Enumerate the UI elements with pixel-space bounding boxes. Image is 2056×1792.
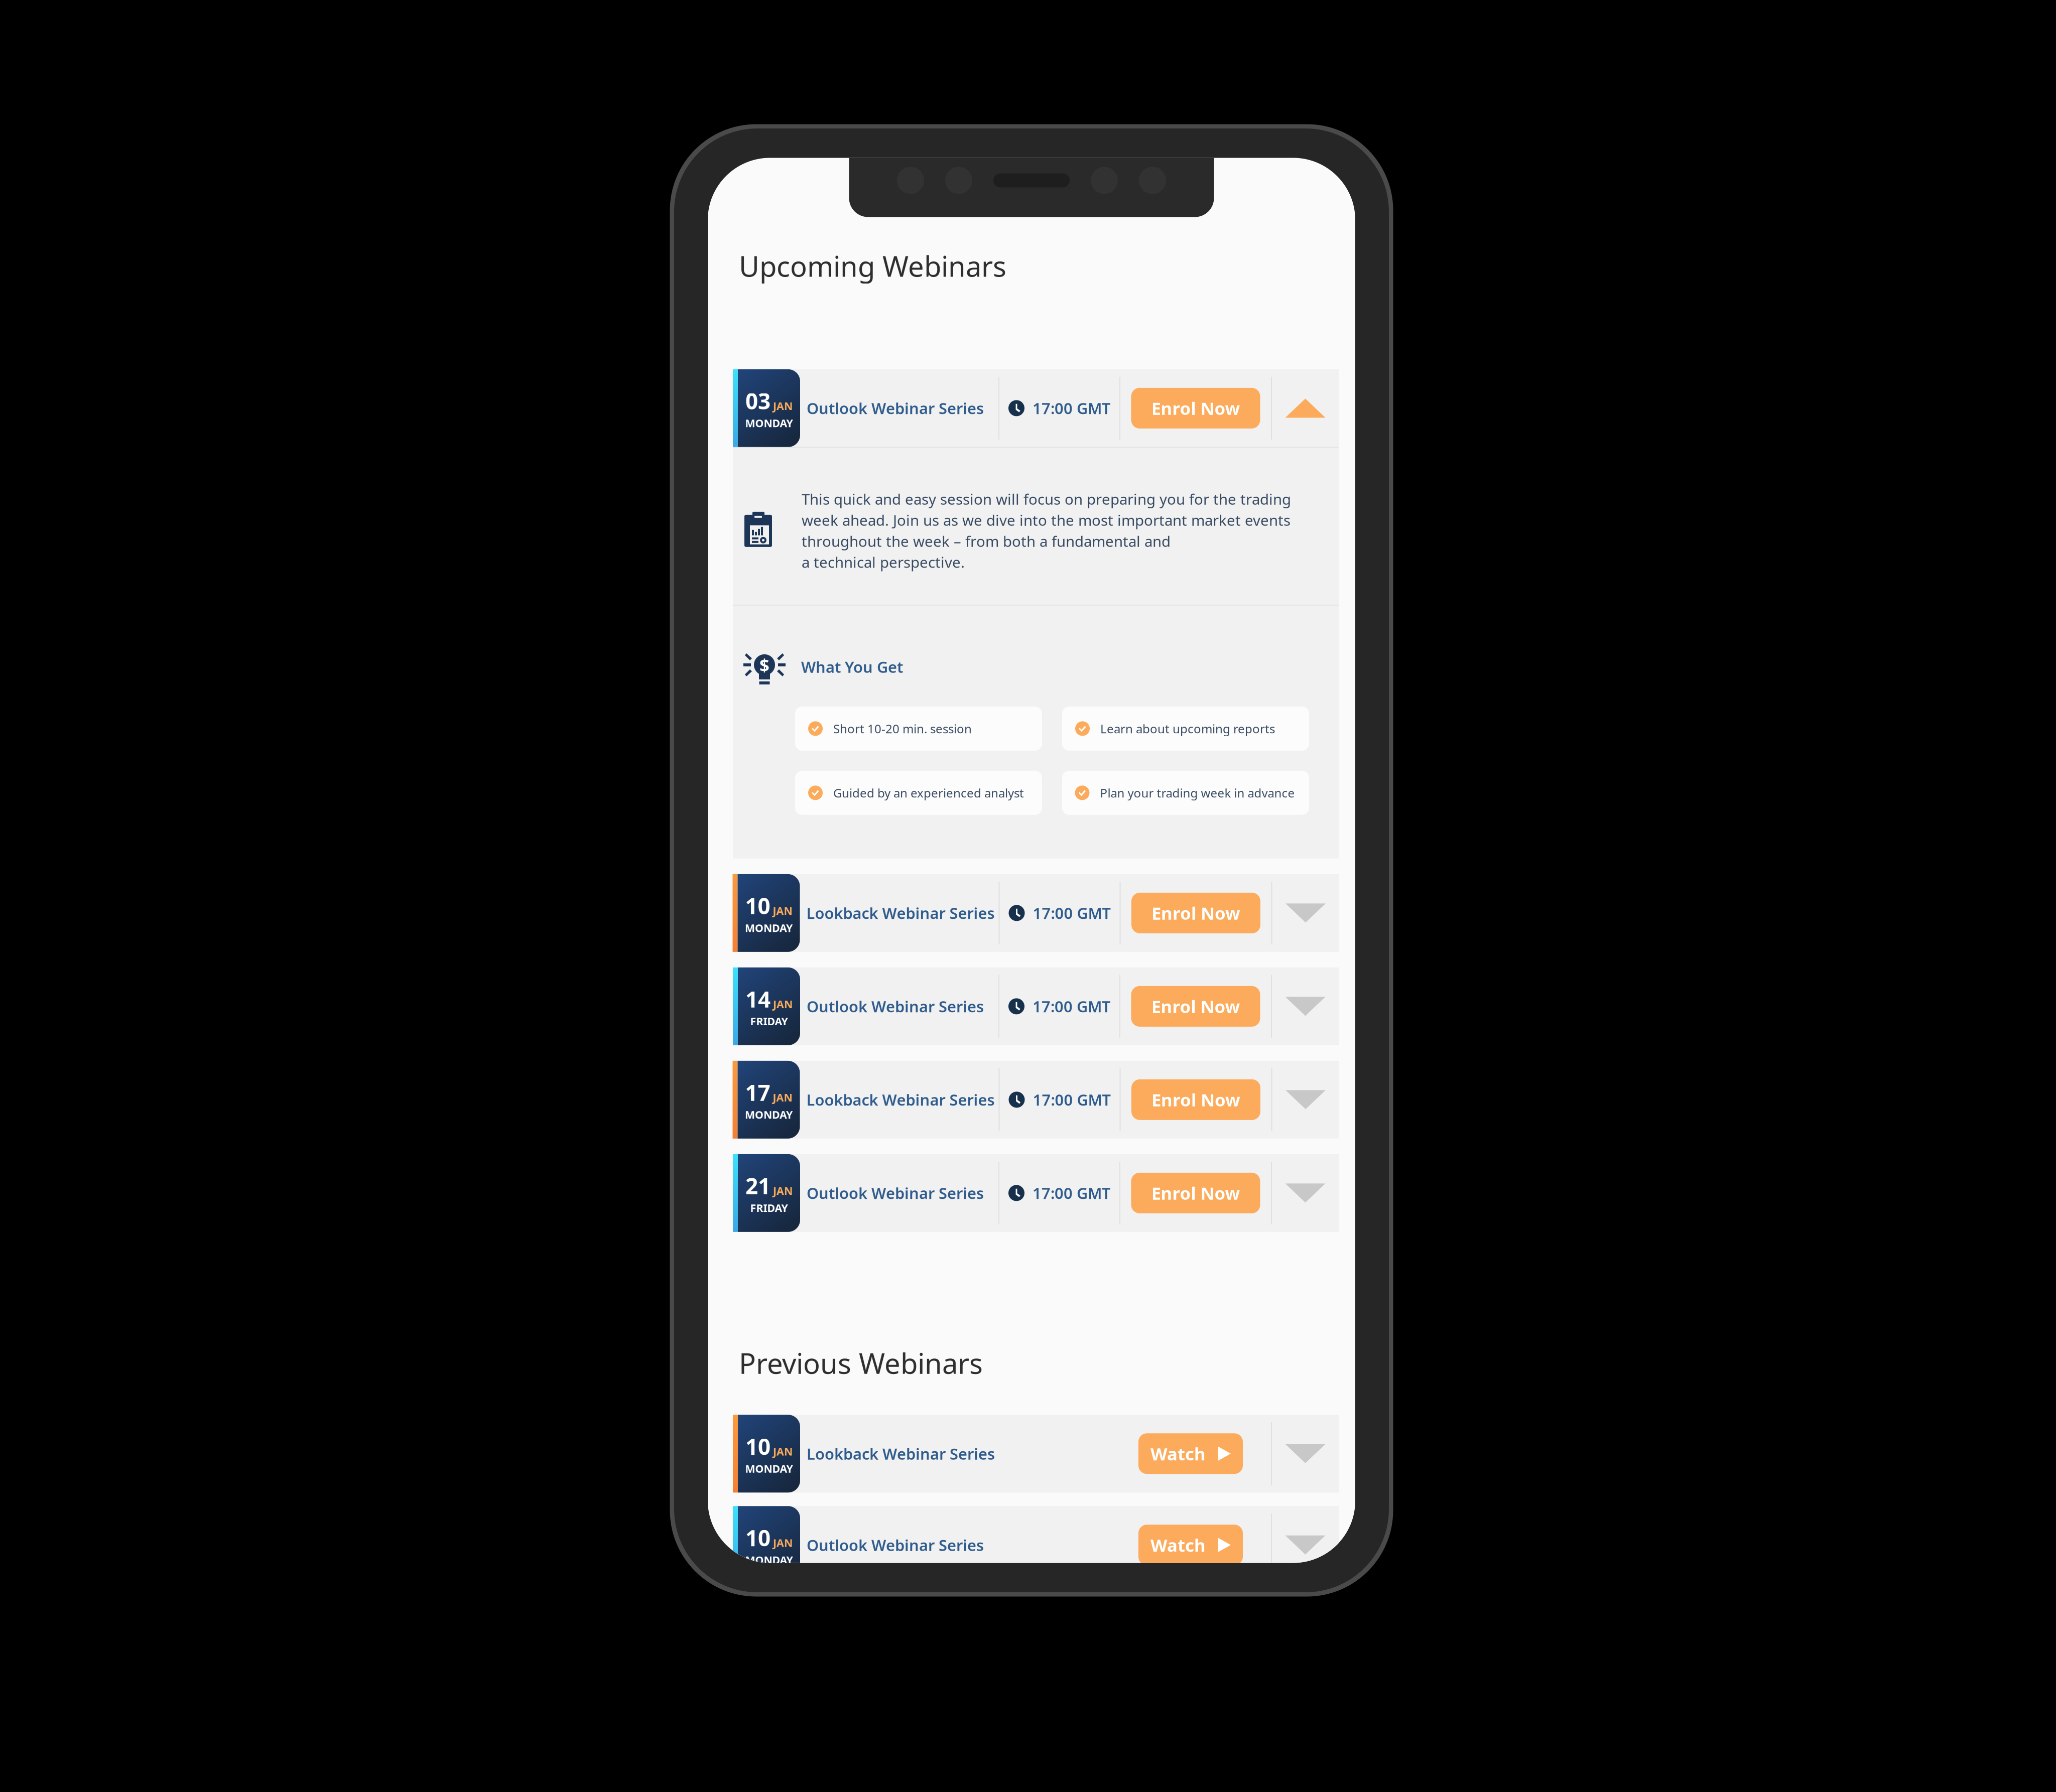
button[interactable]: Expand bbox=[1272, 1415, 1339, 1493]
staticText: Upcoming Webinars bbox=[739, 247, 1006, 284]
staticText: week ahead. Join us as we dive into the … bbox=[802, 510, 1291, 530]
staticText: JAN bbox=[773, 997, 793, 1011]
button[interactable]: Expand bbox=[1272, 1061, 1339, 1139]
staticText: FRIDAY bbox=[750, 1201, 788, 1215]
staticText: MONDAY bbox=[745, 1553, 793, 1567]
staticText: Watch bbox=[1150, 1442, 1206, 1465]
staticText: 10 bbox=[745, 1432, 770, 1461]
button[interactable]: 14 bbox=[708, 967, 1339, 1045]
staticText: Plan your trading week in advance bbox=[1100, 785, 1295, 801]
staticText: 10 bbox=[745, 891, 770, 920]
button[interactable]: Watch bbox=[1138, 1433, 1243, 1474]
button[interactable]: Enrol Now bbox=[1131, 1079, 1260, 1120]
button[interactable]: Enrol Now bbox=[1131, 986, 1260, 1027]
staticText: JAN bbox=[773, 1536, 793, 1550]
button[interactable]: 21 bbox=[708, 1154, 1339, 1232]
staticText: MONDAY bbox=[745, 921, 793, 935]
staticText: throughout the week – from both a fundam… bbox=[802, 531, 1171, 551]
staticText: JAN bbox=[773, 1184, 793, 1198]
button[interactable]: Expand bbox=[1272, 1154, 1339, 1232]
staticText: 17:00 GMT bbox=[1033, 903, 1111, 923]
button[interactable]: Expand bbox=[1272, 874, 1339, 952]
staticText: Outlook Webinar Series bbox=[807, 1183, 984, 1203]
staticText: Outlook Webinar Series bbox=[807, 1535, 984, 1555]
button[interactable]: Watch bbox=[1138, 1525, 1243, 1565]
button[interactable]: Collapse bbox=[1272, 369, 1339, 447]
staticText: JAN bbox=[773, 1090, 792, 1104]
staticText: Learn about upcoming reports bbox=[1100, 721, 1275, 737]
staticText: 17 bbox=[745, 1078, 770, 1107]
button[interactable]: 10 bbox=[708, 1506, 1339, 1584]
staticText: MONDAY bbox=[745, 416, 793, 430]
staticText: JAN bbox=[773, 399, 793, 413]
staticText: Enrol Now bbox=[1151, 995, 1240, 1018]
button[interactable]: Expand bbox=[1272, 1506, 1339, 1584]
staticText: What You Get bbox=[801, 657, 903, 677]
staticText: 21 bbox=[745, 1171, 770, 1200]
staticText: FRIDAY bbox=[750, 1014, 788, 1028]
button[interactable]: 10 bbox=[708, 1415, 1339, 1493]
staticText: 14 bbox=[745, 984, 770, 1014]
staticText: Lookback Webinar Series bbox=[806, 903, 995, 923]
staticText: Outlook Webinar Series bbox=[807, 398, 984, 418]
button[interactable]: 17 bbox=[708, 1061, 1339, 1139]
staticText: 10 bbox=[745, 1523, 770, 1552]
staticText: 17:00 GMT bbox=[1033, 1183, 1110, 1203]
staticText: 17:00 GMT bbox=[1033, 1089, 1111, 1110]
button[interactable]: 10 bbox=[708, 874, 1339, 952]
staticText: 17:00 GMT bbox=[1033, 398, 1110, 418]
staticText: Lookback Webinar Series bbox=[806, 1089, 995, 1110]
staticText: Previous Webinars bbox=[739, 1344, 983, 1382]
staticText: This quick and easy session will focus o… bbox=[802, 489, 1291, 509]
staticText: Enrol Now bbox=[1151, 901, 1240, 925]
staticText: Outlook Webinar Series bbox=[807, 996, 984, 1017]
staticText: Lookback Webinar Series bbox=[807, 1443, 995, 1464]
staticText: 17:00 GMT bbox=[1033, 996, 1110, 1017]
staticText: MONDAY bbox=[745, 1107, 793, 1122]
staticText: Guided by an experienced analyst bbox=[833, 785, 1024, 801]
staticText: Enrol Now bbox=[1151, 397, 1240, 420]
button[interactable]: Enrol Now bbox=[1131, 388, 1260, 429]
button[interactable]: Expand bbox=[1272, 967, 1339, 1045]
staticText: MONDAY bbox=[745, 1461, 793, 1476]
staticText: Short 10-20 min. session bbox=[833, 721, 972, 737]
staticText: Enrol Now bbox=[1151, 1088, 1240, 1111]
button[interactable]: Enrol Now bbox=[1131, 1173, 1260, 1213]
staticText: JAN bbox=[773, 904, 792, 918]
staticText: $ bbox=[759, 653, 769, 676]
staticText: a technical perspective. bbox=[802, 552, 965, 572]
staticText: Watch bbox=[1150, 1533, 1206, 1556]
staticText: Enrol Now bbox=[1151, 1181, 1240, 1205]
staticText: JAN bbox=[773, 1444, 793, 1458]
button[interactable]: Enrol Now bbox=[1131, 893, 1260, 933]
staticText: 03 bbox=[745, 386, 770, 415]
